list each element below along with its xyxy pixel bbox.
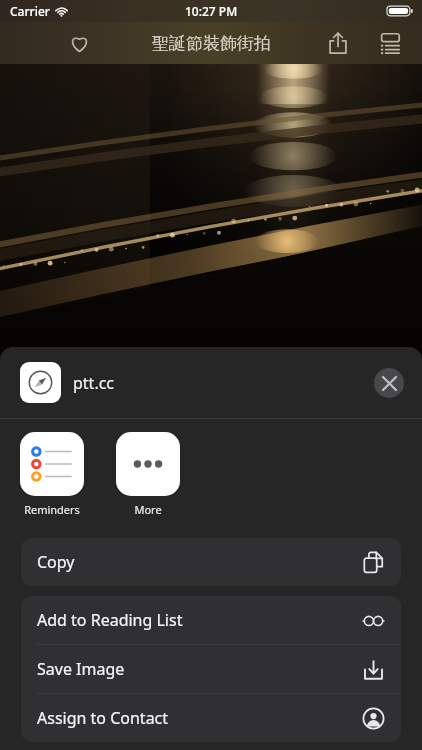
staticText: Save Image	[37, 658, 125, 680]
staticText: Copy	[37, 551, 75, 573]
staticText: More	[134, 502, 162, 517]
button[interactable]: Save Image	[21, 645, 401, 693]
staticText: Carrier	[10, 3, 50, 19]
staticText: ptt.cc	[73, 372, 115, 394]
staticText: 聖誕節裝飾街拍	[152, 33, 271, 54]
staticText: Assign to Contact	[37, 707, 169, 729]
button[interactable]: Details	[372, 25, 408, 61]
button[interactable]: Favourite	[62, 26, 96, 60]
button[interactable]: Assign to Contact	[21, 694, 401, 742]
staticText: 10:27 PM	[185, 3, 238, 19]
button[interactable]: Add to Reading List	[21, 596, 401, 644]
staticText: Reminders	[24, 502, 80, 517]
staticText: Add to Reading List	[37, 609, 183, 631]
button[interactable]: Share	[320, 25, 356, 61]
button[interactable]: Copy	[21, 538, 401, 586]
button[interactable]: Reminders	[20, 432, 84, 517]
button[interactable]: Close	[374, 368, 404, 398]
button[interactable]: More	[116, 432, 180, 517]
